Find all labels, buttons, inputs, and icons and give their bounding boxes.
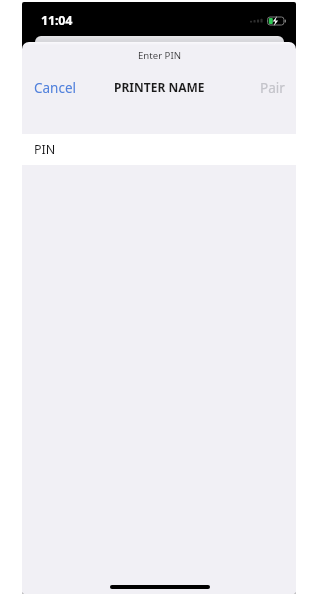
button[interactable]: PIN	[22, 134, 296, 165]
staticText: PIN	[34, 141, 56, 158]
staticText: Cancel	[34, 79, 77, 97]
button[interactable]: Cancel	[22, 70, 91, 106]
other: Cellular signal	[250, 17, 266, 27]
other: Battery charging	[267, 15, 289, 27]
button[interactable]: Pair	[246, 70, 296, 106]
staticText: 11:04	[41, 12, 73, 29]
staticText: PRINTER NAME	[114, 79, 205, 95]
staticText: Enter PIN	[138, 49, 181, 62]
staticText: Pair	[260, 79, 285, 97]
